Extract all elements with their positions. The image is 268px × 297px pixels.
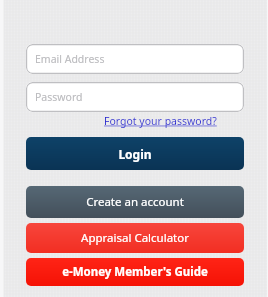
button[interactable]: e-Money Member's Guide xyxy=(26,258,244,286)
button[interactable]: Email Address xyxy=(26,44,244,74)
staticText: Create an account xyxy=(86,194,184,210)
staticText: Password xyxy=(35,90,83,104)
staticText: Email Address xyxy=(35,52,105,66)
staticText: e-Money Member's Guide xyxy=(62,264,208,280)
button[interactable]: Forgot your password? xyxy=(104,114,217,128)
button[interactable]: Appraisal Calculator xyxy=(26,223,244,253)
staticText: Login xyxy=(118,146,152,162)
button[interactable]: Password xyxy=(26,82,244,112)
button[interactable]: Create an account xyxy=(26,186,244,218)
button[interactable]: Login xyxy=(26,137,244,170)
staticText: Appraisal Calculator xyxy=(81,230,189,246)
